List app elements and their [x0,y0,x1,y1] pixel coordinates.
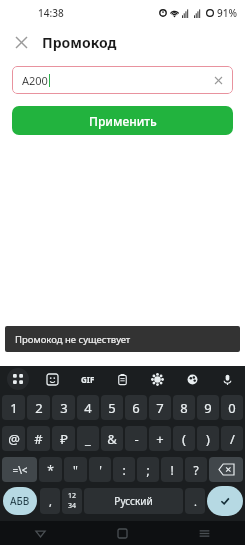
button[interactable]: , [40,488,60,514]
staticText: 8 [180,399,188,417]
button[interactable]: _ [77,426,99,451]
staticText: * [47,462,54,478]
staticText: GIF [81,374,95,385]
button[interactable]: ; [137,457,159,482]
staticText: & [107,430,117,448]
staticText: Промокод [42,33,117,52]
button[interactable]: * [39,457,62,482]
staticText: ₽ [60,430,68,448]
button[interactable]: ? [185,457,207,482]
staticText: 2 [35,399,43,417]
button[interactable]: Home [81,521,163,545]
button[interactable]: 7 [149,395,171,420]
button[interactable]: ( [173,426,195,451]
button[interactable]: . [185,488,205,514]
button[interactable]: - [125,426,147,451]
button[interactable]: АБВ [3,487,37,515]
button[interactable]: Применить [12,106,233,135]
staticText: 6 [132,399,140,417]
staticText: / [230,430,235,448]
staticText: 1 [10,399,18,417]
staticText: 0 [228,399,236,417]
button[interactable]: " [64,457,87,482]
staticText: @ [8,430,20,448]
button[interactable]: ' [89,457,111,482]
staticText: 7 [156,399,164,417]
button[interactable]: Numbers [62,488,82,514]
button[interactable]: Keyboard layouts [0,366,35,392]
staticText: Промокод не существует [15,333,131,346]
button[interactable]: # [27,426,50,451]
button[interactable]: A200 [12,66,233,94]
staticText: # [34,430,43,448]
button[interactable]: @ [2,426,25,451]
staticText: . [194,494,197,509]
staticText: A200 [22,73,48,88]
button[interactable]: Themes [175,366,210,392]
button[interactable]: 8 [173,395,195,420]
staticText: _ [85,430,91,448]
button[interactable]: 3 [52,395,75,420]
button[interactable]: 4 [77,395,99,420]
button[interactable]: Close [8,29,34,55]
button[interactable]: Stickers [35,366,70,392]
button[interactable]: ) [197,426,219,451]
staticText: ; [146,462,150,478]
staticText: 91% [217,6,237,20]
staticText: " [73,462,78,478]
button[interactable]: =\< [2,457,37,482]
staticText: АБВ [10,494,30,508]
button[interactable]: 6 [125,395,147,420]
staticText: ' [99,462,102,478]
button[interactable]: 0 [221,395,243,420]
button[interactable]: & [101,426,123,451]
staticText: 9 [204,399,212,417]
staticText: ) [206,430,210,448]
button[interactable]: 1 [2,395,25,420]
button[interactable]: Enter [207,486,243,516]
staticText: 14:38 [38,6,64,20]
staticText: 4 [84,399,92,417]
button[interactable]: Backspace [209,457,243,482]
button[interactable]: Back [0,521,81,545]
button[interactable]: 5 [101,395,123,420]
staticText: 3 [60,399,68,417]
staticText: Русский [114,494,153,508]
button[interactable]: 9 [197,395,219,420]
button[interactable]: Settings [140,366,175,392]
staticText: 34 [68,501,77,511]
button[interactable]: Voice input [210,366,245,392]
button[interactable]: + [149,426,171,451]
staticText: : [122,462,126,478]
button[interactable]: GIF [70,366,105,392]
staticText: - [134,430,139,448]
staticText: ! [170,462,174,478]
staticText: ( [182,430,186,448]
button[interactable]: Clear text [209,71,227,89]
button[interactable]: Промокод не существует [5,326,240,352]
button[interactable]: Русский [84,488,183,514]
staticText: =\< [12,463,28,477]
button[interactable]: ₽ [52,426,75,451]
button[interactable]: Recents [163,521,245,545]
button[interactable]: Clipboard [105,366,140,392]
staticText: ? [193,462,199,478]
button[interactable]: / [221,426,243,451]
staticText: + [156,430,164,448]
button[interactable]: 2 [27,395,50,420]
button[interactable]: : [113,457,135,482]
staticText: 5 [108,399,116,417]
staticText: , [49,494,52,509]
staticText: Применить [89,113,157,129]
staticText: 12 [68,491,77,501]
button[interactable]: ! [161,457,183,482]
